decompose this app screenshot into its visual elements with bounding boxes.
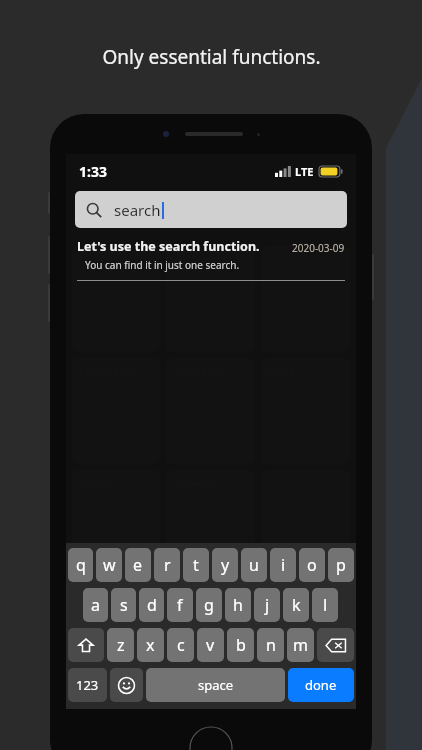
staticText: w: [103, 554, 116, 576]
button[interactable]: c: [167, 628, 194, 662]
button[interactable]: t: [183, 548, 209, 582]
button[interactable]: m: [287, 628, 314, 662]
button[interactable]: e: [125, 548, 151, 582]
staticText: done: [305, 676, 337, 694]
staticText: Only essential functions.: [102, 44, 321, 70]
button[interactable]: r: [154, 548, 180, 582]
staticText: Let's use the search function.: [77, 238, 260, 255]
staticText: LTE: [295, 164, 314, 179]
button[interactable]: b: [227, 628, 254, 662]
staticText: p: [336, 554, 346, 576]
button[interactable]: v: [197, 628, 224, 662]
staticText: g: [204, 594, 214, 616]
staticText: y: [221, 554, 230, 576]
button[interactable]: space: [146, 668, 285, 702]
staticText: z: [117, 634, 125, 656]
staticText: d: [147, 594, 157, 616]
staticText: s: [120, 594, 128, 616]
staticText: u: [249, 554, 259, 576]
button[interactable]: s: [111, 588, 136, 622]
button[interactable]: i: [270, 548, 296, 582]
staticText: space: [198, 676, 234, 694]
staticText: m: [293, 634, 308, 656]
staticText: n: [266, 634, 276, 656]
button[interactable]: Shift: [68, 628, 104, 662]
button[interactable]: Let's use the search function.: [66, 231, 356, 281]
staticText: 123: [76, 676, 99, 694]
staticText: search: [114, 200, 161, 220]
staticText: 1:33: [79, 162, 107, 181]
staticText: e: [133, 554, 143, 576]
staticText: You can find it in just one search.: [85, 258, 240, 272]
button[interactable]: l: [312, 588, 338, 622]
button[interactable]: d: [139, 588, 164, 622]
staticText: t: [193, 554, 199, 576]
button[interactable]: j: [254, 588, 280, 622]
staticText: i: [281, 554, 286, 576]
button[interactable]: Emoji: [110, 668, 143, 702]
button[interactable]: k: [283, 588, 309, 622]
button[interactable]: q: [68, 548, 93, 582]
staticText: f: [177, 594, 183, 616]
staticText: q: [76, 554, 86, 576]
button[interactable]: done: [288, 668, 354, 702]
staticText: 2020-03-09: [292, 241, 345, 255]
button[interactable]: a: [83, 588, 108, 622]
button[interactable]: 123: [68, 668, 107, 702]
button[interactable]: u: [241, 548, 267, 582]
button[interactable]: x: [137, 628, 164, 662]
staticText: o: [307, 554, 317, 576]
button[interactable]: search: [75, 191, 347, 228]
staticText: r: [164, 554, 171, 576]
staticText: c: [177, 634, 185, 656]
button[interactable]: w: [96, 548, 122, 582]
staticText: a: [91, 594, 100, 616]
staticText: h: [233, 594, 243, 616]
button[interactable]: o: [299, 548, 325, 582]
button[interactable]: Backspace: [317, 628, 354, 662]
button[interactable]: f: [167, 588, 193, 622]
staticText: j: [265, 594, 270, 616]
staticText: v: [206, 634, 215, 656]
button[interactable]: n: [257, 628, 284, 662]
button[interactable]: g: [196, 588, 222, 622]
button[interactable]: z: [107, 628, 134, 662]
button[interactable]: h: [225, 588, 251, 622]
staticText: l: [323, 594, 328, 616]
staticText: b: [236, 634, 246, 656]
staticText: x: [146, 634, 155, 656]
staticText: k: [292, 594, 301, 616]
button[interactable]: y: [212, 548, 238, 582]
button[interactable]: p: [328, 548, 354, 582]
